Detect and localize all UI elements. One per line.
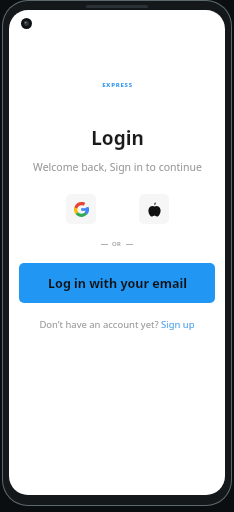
staticText: EXPRESS: [102, 81, 133, 89]
button[interactable]: Don’t have an account yet? Sign up: [33, 316, 201, 333]
staticText: Log in with your email: [48, 275, 187, 292]
staticText: Welcome back, Sign in to continue: [33, 160, 202, 174]
staticText: OR: [112, 240, 122, 248]
staticText: Don’t have an account yet? Sign up: [39, 318, 195, 331]
button[interactable]: Sign in with Apple: [139, 194, 169, 224]
button[interactable]: Sign in with Google: [66, 194, 96, 224]
staticText: Login: [91, 125, 144, 151]
button[interactable]: Log in with your email: [19, 263, 215, 303]
